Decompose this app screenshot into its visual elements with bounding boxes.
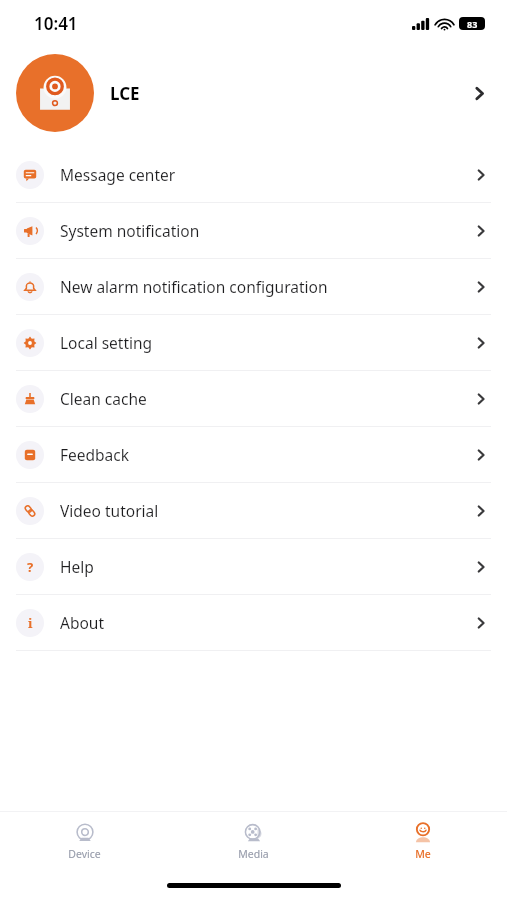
staticText: Video tutorial — [60, 500, 159, 521]
button[interactable]: ? — [0, 539, 507, 594]
staticText: i — [28, 614, 33, 632]
button[interactable]: Media — [169, 812, 338, 870]
button[interactable]: i — [0, 595, 507, 650]
staticText: 10:41 — [34, 12, 78, 35]
staticText: LCE — [110, 82, 140, 105]
button[interactable]: Feedback — [0, 427, 507, 482]
staticText: About — [60, 612, 104, 633]
staticText: 83 — [467, 18, 478, 30]
staticText: Me — [415, 847, 431, 861]
button[interactable]: LCE — [0, 46, 507, 140]
staticText: ? — [27, 558, 34, 576]
button[interactable]: Local setting — [0, 315, 507, 370]
staticText: Media — [238, 847, 269, 861]
staticText: Clean cache — [60, 388, 147, 409]
button[interactable]: System notification — [0, 203, 507, 258]
staticText: Device — [68, 847, 101, 861]
button[interactable]: Me — [338, 812, 507, 870]
staticText: Message center — [60, 164, 176, 185]
staticText: Help — [60, 556, 94, 577]
staticText: New alarm notification configuration — [60, 276, 328, 297]
button[interactable]: New alarm notification configuration — [0, 259, 507, 314]
button[interactable]: Video tutorial — [0, 483, 507, 538]
button[interactable]: Message center — [0, 147, 507, 202]
staticText: Feedback — [60, 444, 130, 465]
button[interactable]: Device — [0, 812, 169, 870]
staticText: Local setting — [60, 332, 153, 353]
button[interactable]: Clean cache — [0, 371, 507, 426]
staticText: System notification — [60, 220, 200, 241]
